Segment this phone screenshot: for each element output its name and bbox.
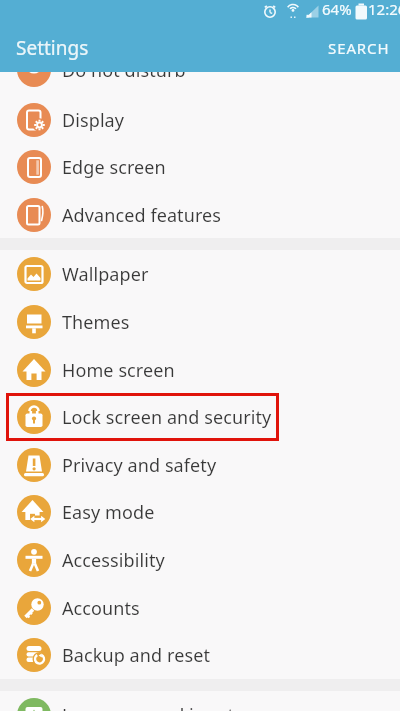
button[interactable]: SEARCH — [318, 26, 400, 70]
staticText: Home screen — [62, 358, 175, 383]
button[interactable]: Easy mode — [0, 488, 400, 536]
staticText: Lock screen and security — [62, 405, 272, 430]
staticText: Backup and reset — [62, 643, 210, 668]
staticText: Language and input — [62, 703, 235, 711]
button[interactable]: Accounts — [0, 584, 400, 632]
button[interactable]: Wallpaper — [0, 250, 400, 298]
button[interactable]: Accessibility — [0, 536, 400, 584]
staticText: SEARCH — [328, 38, 390, 58]
button[interactable]: Edge screen — [0, 143, 400, 191]
staticText: Edge screen — [62, 155, 166, 180]
staticText: Settings — [16, 35, 89, 61]
staticText: Advanced features — [62, 203, 222, 228]
button[interactable]: Language and input — [0, 691, 400, 711]
staticText: 64% — [322, 0, 352, 19]
button[interactable]: Do not disturb — [0, 72, 400, 94]
staticText: Privacy and safety — [62, 453, 217, 478]
button[interactable]: Advanced features — [0, 191, 400, 239]
button[interactable]: Lock screen and security — [0, 393, 400, 441]
button[interactable]: Themes — [0, 298, 400, 346]
staticText: Accounts — [62, 596, 140, 621]
button[interactable]: Display — [0, 96, 400, 144]
staticText: Do not disturb — [62, 72, 186, 83]
staticText: Themes — [62, 310, 130, 335]
staticText: Easy mode — [62, 500, 155, 525]
button[interactable]: Privacy and safety — [0, 441, 400, 489]
button[interactable]: Home screen — [0, 346, 400, 394]
staticText: Wallpaper — [62, 262, 149, 287]
staticText: Accessibility — [62, 548, 165, 573]
staticText: 12:26 — [368, 0, 400, 19]
staticText: Display — [62, 108, 125, 133]
button[interactable]: Backup and reset — [0, 631, 400, 679]
